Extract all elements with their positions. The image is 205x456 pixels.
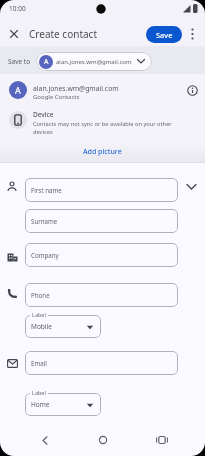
button[interactable] (98, 435, 108, 445)
button[interactable]: Home (25, 393, 101, 416)
staticText: Save (156, 30, 173, 40)
staticText: A (15, 84, 21, 96)
button[interactable]: Email (25, 351, 178, 375)
button[interactable]: First name (25, 178, 178, 202)
staticText: Create contact (29, 27, 98, 41)
staticText: Label (32, 389, 46, 396)
staticText: devices (33, 128, 53, 136)
staticText: Contacts may not sync or be available on… (33, 120, 172, 128)
button[interactable] (187, 85, 198, 96)
staticText: Company (31, 251, 59, 259)
staticText: Home (31, 400, 50, 409)
button[interactable]: Surname (25, 209, 178, 233)
button[interactable]: Phone (25, 283, 178, 307)
button[interactable] (10, 30, 18, 38)
button[interactable]: Mobile (25, 315, 101, 338)
staticText: Add picture (83, 147, 122, 157)
staticText: Mobile (31, 322, 52, 331)
button[interactable] (156, 435, 168, 445)
staticText: alan.jones.wm@gmail.com (56, 58, 132, 66)
button[interactable]: Save (146, 26, 182, 43)
button[interactable] (189, 28, 196, 40)
staticText: Email (31, 359, 47, 367)
staticText: Label (32, 311, 46, 318)
button[interactable] (41, 436, 49, 445)
button[interactable]: Add picture (0, 147, 205, 157)
staticText: A (44, 57, 49, 67)
button[interactable] (186, 183, 197, 191)
staticText: Save to (8, 57, 31, 66)
button[interactable]: A (36, 52, 152, 71)
staticText: Phone (31, 291, 50, 299)
staticText: alan.jones.wm@gmail.com (33, 84, 119, 93)
button[interactable]: Company (25, 243, 178, 267)
staticText: Surname (31, 217, 58, 225)
staticText: Device (33, 110, 54, 119)
staticText: Google Contacts (33, 93, 80, 101)
staticText: 10:00 (9, 4, 26, 13)
staticText: First name (31, 186, 62, 194)
